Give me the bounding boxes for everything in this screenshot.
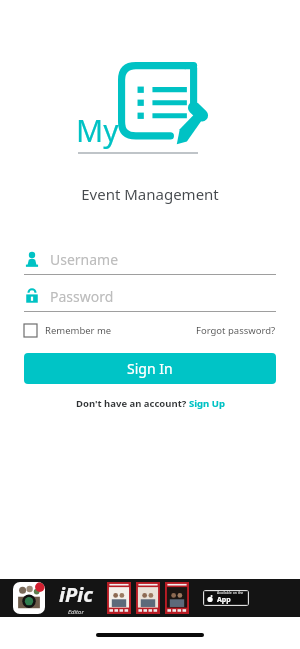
staticText: My <box>76 110 119 151</box>
staticText: Password <box>50 287 114 306</box>
button[interactable]: iPic Editor advertisement <box>0 579 300 617</box>
staticText: Username <box>50 250 119 269</box>
button[interactable]: Username <box>24 246 276 272</box>
button[interactable]: Sign In <box>24 353 276 384</box>
staticText: Sign In <box>127 359 173 378</box>
staticText: Forgot password? <box>196 324 276 337</box>
button[interactable]: Remember me <box>24 324 112 337</box>
button[interactable]: Password <box>24 283 276 309</box>
staticText: Available on the <box>217 590 244 595</box>
staticText: App Store <box>217 595 246 606</box>
staticText: Don't have an account? <box>76 397 189 410</box>
button[interactable]: Forgot password? <box>196 324 276 337</box>
staticText: iPic <box>59 581 93 608</box>
staticText: Sign Up <box>189 397 225 410</box>
button[interactable]: Sign Up <box>189 397 225 410</box>
staticText: Editor <box>68 608 84 616</box>
button[interactable]: Download on the App Store <box>203 590 249 606</box>
staticText: Remember me <box>45 324 112 337</box>
staticText: Event Management <box>81 184 219 204</box>
